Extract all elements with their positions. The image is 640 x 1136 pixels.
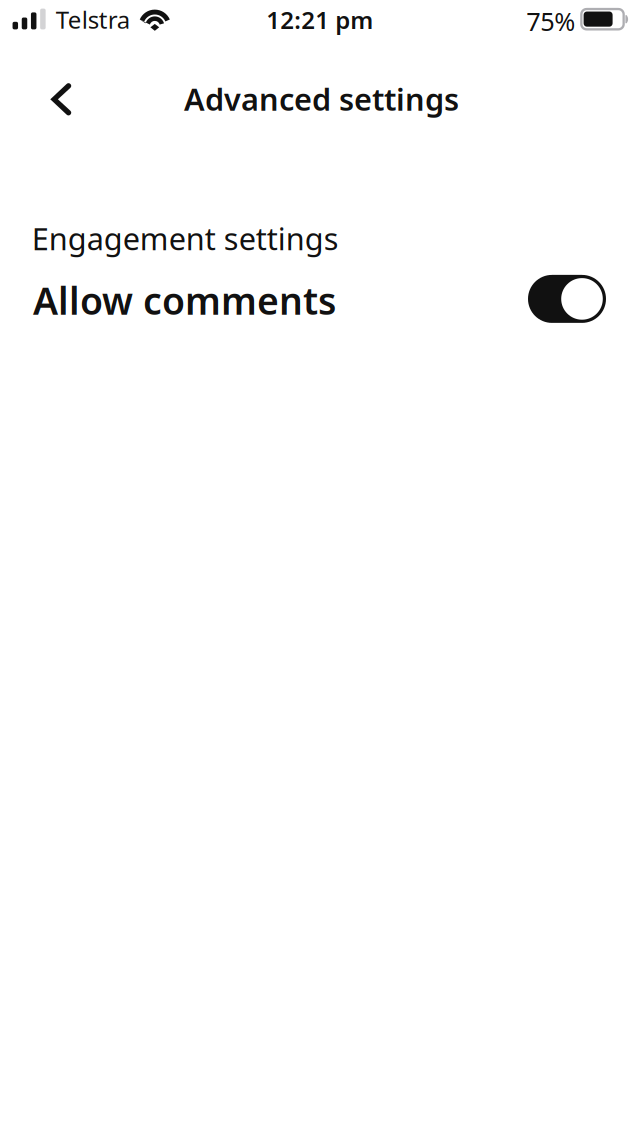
staticText: 75% <box>526 4 575 38</box>
staticText: 12:21 pm <box>266 4 373 36</box>
staticText: Allow comments <box>33 275 336 325</box>
staticText: Telstra <box>56 4 130 35</box>
staticText: Engagement settings <box>32 218 339 259</box>
button[interactable]: Allow comments, on <box>528 275 606 323</box>
staticText: Advanced settings <box>184 78 459 119</box>
button[interactable]: Back <box>33 71 89 127</box>
